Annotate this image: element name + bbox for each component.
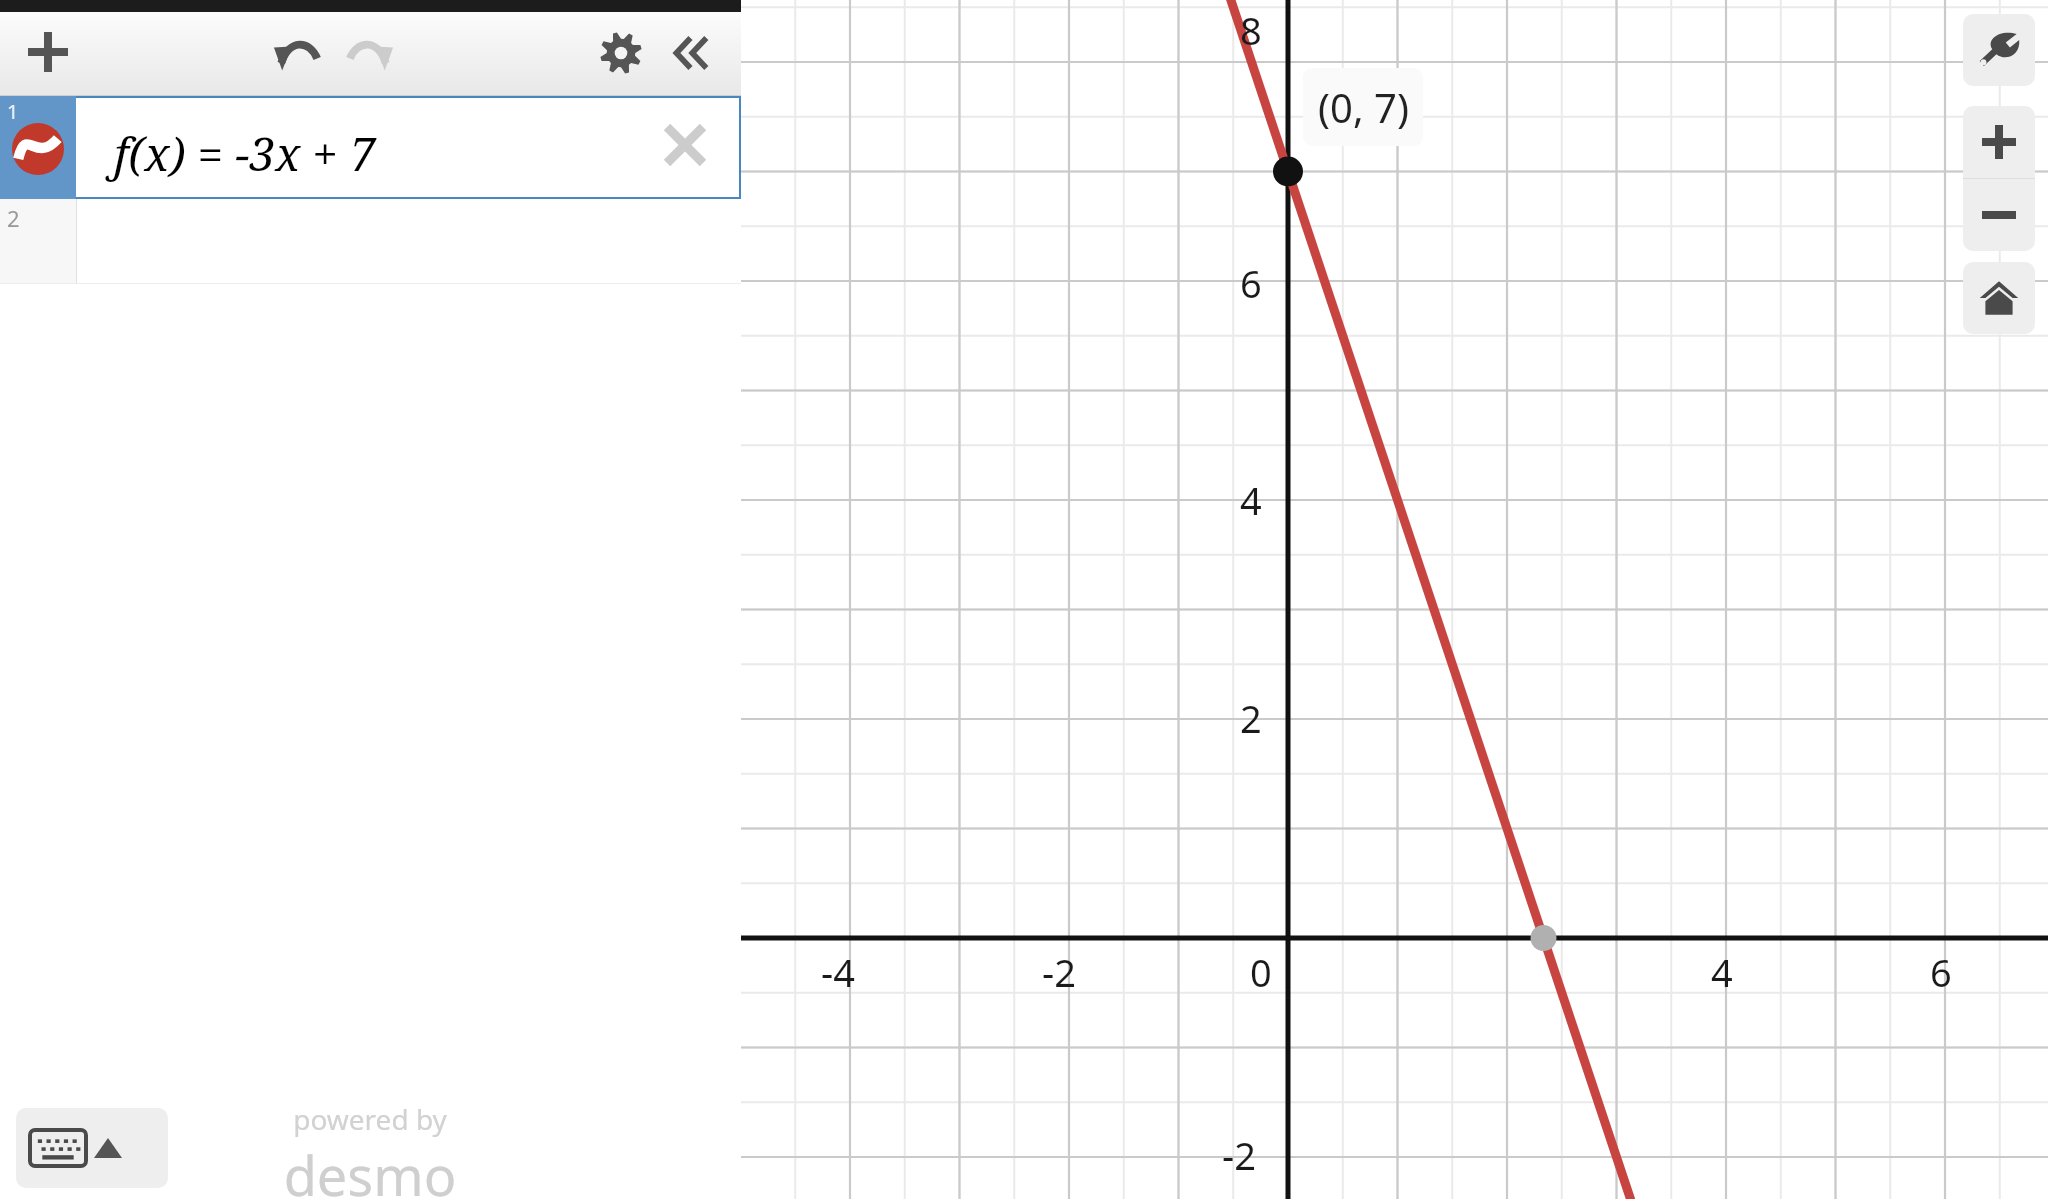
staticText: 0 xyxy=(1250,946,1272,998)
staticText: desmos xyxy=(280,1138,460,1199)
staticText: 2 xyxy=(7,203,20,233)
button[interactable]: Undo xyxy=(265,22,327,84)
staticText: powered by xyxy=(293,1100,447,1138)
button[interactable]: Toggle keypad xyxy=(16,1108,168,1188)
staticText: (0, 7) xyxy=(1318,80,1409,134)
staticText: 1 xyxy=(7,98,19,125)
button[interactable]: Add expression xyxy=(16,20,80,84)
staticText: 4 xyxy=(1240,474,1262,526)
button[interactable]: Default zoom xyxy=(1963,262,2035,334)
button[interactable]: (0, 7) xyxy=(1303,68,1423,146)
staticText: 6 xyxy=(1240,257,1262,309)
staticText: 6 xyxy=(1930,946,1952,998)
staticText: 8 xyxy=(1240,4,1262,56)
staticText: -4 xyxy=(821,946,855,998)
button[interactable]: Zoom out xyxy=(1963,179,2035,251)
button[interactable]: Settings xyxy=(590,22,652,84)
button[interactable]: Redo xyxy=(340,22,402,84)
button[interactable]: Graph settings xyxy=(1963,14,2035,86)
button[interactable]: 1 xyxy=(0,96,741,199)
button[interactable]: Zoom in xyxy=(1963,106,2035,178)
staticText: ƒ(x) = −3x + 7 xyxy=(110,122,376,185)
button[interactable]: Delete expression xyxy=(654,114,716,176)
staticText: -2 xyxy=(1042,946,1076,998)
staticText: 4 xyxy=(1711,946,1733,998)
staticText: -2 xyxy=(1222,1129,1256,1181)
staticText: 2 xyxy=(1240,692,1262,744)
button[interactable]: 2 xyxy=(0,199,741,283)
button[interactable]: Collapse panel xyxy=(663,22,725,84)
